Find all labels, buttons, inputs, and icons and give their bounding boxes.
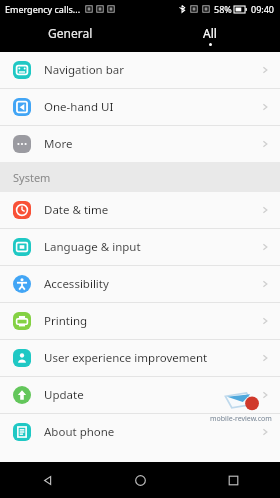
staticText: About phone	[44, 424, 115, 440]
button[interactable]: User experience improvement	[0, 340, 280, 376]
button[interactable]: All	[140, 18, 280, 52]
staticText: More	[44, 136, 73, 152]
staticText: Update	[44, 387, 84, 403]
staticText: 09:40	[251, 3, 275, 15]
staticText: User experience improvement	[44, 350, 208, 366]
staticText: Printing	[44, 313, 88, 329]
button[interactable]: One-hand UI	[0, 89, 280, 125]
button[interactable]: Printing	[0, 303, 280, 339]
button[interactable]: Language & input	[0, 229, 280, 265]
button[interactable]: More	[0, 126, 280, 162]
staticText: Emergency calls...	[5, 3, 81, 15]
staticText: Accessibility	[44, 276, 109, 292]
button[interactable]: Update	[0, 377, 280, 413]
staticText: All	[203, 25, 217, 41]
button[interactable]: About phone	[0, 414, 280, 450]
staticText: Language & input	[44, 239, 141, 255]
button[interactable]: Recent apps	[187, 462, 280, 498]
staticText: Date & time	[44, 202, 109, 218]
button[interactable]: Accessibility	[0, 266, 280, 302]
staticText: 58%	[214, 3, 232, 15]
staticText: mobile-review.com	[210, 414, 272, 424]
button[interactable]: Navigation bar	[0, 52, 280, 88]
staticText: System	[13, 170, 51, 185]
button[interactable]: Back	[0, 462, 94, 498]
button[interactable]: Home	[94, 462, 187, 498]
staticText: General	[48, 25, 93, 41]
button[interactable]: General	[0, 18, 140, 52]
staticText: Navigation bar	[44, 62, 124, 78]
button[interactable]: Date & time	[0, 192, 280, 228]
staticText: One-hand UI	[44, 99, 114, 115]
